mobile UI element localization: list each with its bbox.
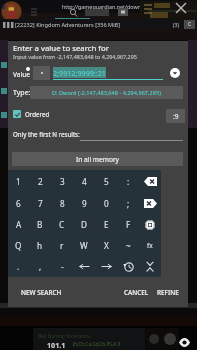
staticText: X [104,240,109,251]
staticText: Jh,Ch,Ca,Cd,Cb,PS,A 3 [73,341,121,348]
button[interactable]: REFINE [153,284,183,301]
button[interactable]: History [117,256,139,277]
button[interactable]: Toggle visibility [178,336,190,348]
staticText: B [37,219,43,230]
staticText: A [16,219,22,230]
staticText: h [37,240,43,251]
staticText: E [104,219,109,230]
staticText: NEW SEARCH [21,288,62,297]
staticText: Value [13,70,31,79]
button[interactable]: . [8,256,29,277]
button[interactable]: 1 [8,170,29,192]
button[interactable]: - [51,256,73,277]
staticText: : [127,176,130,187]
staticText: http://gameguardian.net/download [62,3,153,10]
button[interactable]: NEW SEARCH [17,284,66,301]
staticText: F [126,219,131,230]
staticText: 6 [16,198,21,209]
button[interactable]: 6 [8,192,29,214]
staticText: 0 [104,198,109,209]
staticText: D: Dword (-2,147,483,648 - 4,294,967,295… [52,89,161,97]
staticText: W [80,240,88,251]
button[interactable]: Ordered [13,109,46,119]
button[interactable]: 4 [73,170,95,192]
staticText: (3) [173,21,180,28]
button[interactable]: Equals operator [33,66,50,80]
button[interactable]: 8 [51,192,73,214]
staticText: Q [15,240,22,251]
button[interactable]: Backspace [139,170,161,192]
staticText: C [188,21,192,28]
staticText: Beli Barang Incerannu [38,333,91,340]
staticText: 2;9912;9999::21 [53,68,106,78]
staticText: In all memory [76,155,119,164]
button[interactable]: : [117,170,139,192]
button[interactable]: W [73,235,95,256]
staticText: Enter a value to search for [13,43,109,54]
button[interactable]: ~ [117,235,139,256]
staticText: 2 [38,176,43,187]
staticText: 7 [38,198,43,209]
button[interactable]: Delete [139,192,161,214]
button[interactable]: Memory regions [139,214,161,235]
button[interactable]: Move right [95,256,117,277]
staticText: D [81,219,87,230]
button[interactable]: Move left [73,256,95,277]
button[interactable]: Beli Barang Incerannu [33,328,145,350]
button[interactable]: , [29,256,51,277]
staticText: 9 [82,198,87,209]
button[interactable]: ; [117,192,139,214]
staticText: 8 [60,198,65,209]
staticText: 1 [16,176,21,187]
button[interactable]: 0 [95,192,117,214]
button[interactable]: A [8,214,29,235]
staticText: ~ [126,240,131,251]
staticText: 101.1 [47,340,66,350]
staticText: REFINE [157,288,179,297]
button[interactable]: In all memory [12,152,183,166]
staticText: 4 [82,176,87,187]
button[interactable]: Collapse keyboard [139,256,161,277]
button[interactable]: 3 [51,170,73,192]
staticText: 5 [104,176,109,187]
staticText: :9 [173,112,179,121]
button[interactable]: C [51,214,73,235]
button[interactable]: 9 [73,192,95,214]
staticText: 3 [60,176,65,187]
button[interactable]: h [29,235,51,256]
button[interactable]: 2 [29,170,51,192]
staticText: [22232] Kingdom Adventurers [356 MiB] [15,21,121,29]
button[interactable]: D [73,214,95,235]
button[interactable]: Q [8,235,29,256]
staticText: . [17,261,20,272]
button[interactable]: X [95,235,117,256]
button[interactable]: 7 [29,192,51,214]
staticText: Ordered [25,110,50,118]
button[interactable]: D: Dword (-2,147,483,648 - 4,294,967,295… [30,86,183,99]
button[interactable]: Show value options [170,68,180,78]
button[interactable]: 5 [95,170,117,192]
button[interactable]: B [29,214,51,235]
button[interactable]: r [51,235,73,256]
button[interactable]: E [95,214,117,235]
staticText: CANCEL [124,288,149,297]
button[interactable]: F [117,214,139,235]
staticText: , [39,261,42,272]
button[interactable] [80,129,183,141]
staticText: Type: [13,88,31,98]
staticText: Only the first N results: [13,130,80,138]
button[interactable]: Key [139,235,161,256]
staticText: fx [147,241,153,250]
staticText: C [59,219,65,230]
staticText: r [60,240,64,251]
staticText: Input value from -2,147,483,648 to 4,294… [13,53,137,60]
staticText: - [61,261,64,272]
staticText: ; [127,198,130,209]
button[interactable]: Result count [166,109,185,123]
button[interactable]: Screenshot [184,20,195,29]
button[interactable]: CANCEL [120,284,153,301]
